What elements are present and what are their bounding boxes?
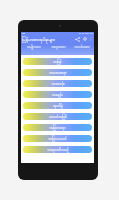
button[interactable]: Settings [81, 35, 88, 43]
staticText: အထူးအစီအစဉ် [47, 147, 69, 153]
staticText: အအေးစာရာ [49, 70, 67, 76]
button[interactable]: အအေးစာရာ [23, 69, 92, 76]
button[interactable]: အမျိုးအစား [21, 43, 46, 51]
button[interactable]: အအာလုံး [23, 80, 92, 87]
button[interactable]: More options [88, 35, 93, 43]
staticText: အအာလုံး [51, 81, 65, 87]
button[interactable]: Search [74, 35, 81, 43]
button[interactable]: ရာသီဖွဲ [23, 102, 92, 109]
button[interactable]: မေးခွန်း [23, 91, 92, 98]
staticText: အမျိုးအစား [27, 45, 41, 50]
button[interactable]: အခြားသတင် [23, 135, 92, 142]
button[interactable]: အဖြင့် [23, 58, 92, 65]
staticText: မြန်မာစာအုပ်စုများ [22, 36, 56, 43]
staticText: အထူးအစား [51, 45, 66, 50]
staticText: အခြားသတင် [48, 136, 67, 142]
staticText: အဖြင့် [53, 59, 62, 65]
staticText: မေးခွန်း [52, 92, 63, 98]
button[interactable]: အထူးအစား [46, 43, 70, 51]
staticText: အသင်အဖြစ် [49, 114, 67, 120]
button[interactable]: အထူးအစီအစဉ် [23, 146, 92, 153]
button[interactable]: အသင်အဖြစ် [23, 113, 92, 120]
staticText: အသစ်အစား [74, 45, 90, 50]
staticText: ရာသီဖွဲ [53, 103, 63, 109]
button[interactable]: အခြားအရာ [23, 124, 92, 131]
button[interactable]: အသစ်အစား [70, 43, 94, 51]
staticText: အခြားအရာ [49, 125, 66, 131]
